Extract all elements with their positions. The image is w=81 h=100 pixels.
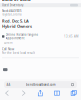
button[interactable]: Bookmarks (54, 90, 60, 97)
button[interactable]: Forward (21, 90, 27, 97)
staticText: 13:45 AM (64, 35, 78, 38)
button[interactable]: Page settings (4, 81, 13, 88)
button[interactable]: Tabs (70, 90, 77, 97)
staticText: Lorem (4, 41, 12, 44)
staticText: Online Retailer Engine Appointment (6, 33, 39, 40)
staticText: bendbroadband.com (26, 83, 55, 86)
staticText: Used Inventory (2, 3, 23, 7)
button[interactable]: Share (37, 90, 44, 97)
staticText: Stock #A4VE35 (2, 9, 22, 13)
staticText: For the best local result (2, 51, 35, 55)
staticText: Red, Dec 5, LA (2, 18, 29, 24)
staticText: BMW of Bend (2, 0, 31, 2)
staticText: Toyota Corolla (2, 13, 21, 16)
button[interactable]: Reload (68, 81, 77, 88)
staticText: Hybrid Owners (2, 24, 32, 29)
staticText: Call Now (2, 47, 14, 51)
button[interactable]: Back (4, 90, 10, 97)
staticText: AA (6, 83, 10, 86)
